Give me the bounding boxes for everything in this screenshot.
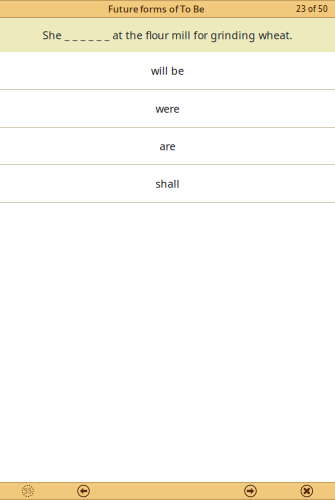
staticText: shall xyxy=(155,176,179,191)
button[interactable]: shall xyxy=(0,165,335,203)
button[interactable]: Close xyxy=(300,484,313,497)
staticText: are xyxy=(159,139,175,153)
staticText: will be xyxy=(151,63,184,78)
button[interactable]: will be xyxy=(0,52,335,90)
button[interactable]: Next question xyxy=(244,484,257,497)
staticText: 23 of 50 xyxy=(296,4,328,14)
button[interactable]: Score xyxy=(21,484,34,497)
staticText: 55 xyxy=(24,487,32,495)
button[interactable]: are xyxy=(0,128,335,165)
staticText: were xyxy=(155,101,179,116)
staticText: She _ _ _ _ _ _ at the flour mill for gr… xyxy=(42,28,292,42)
button[interactable]: Previous question xyxy=(77,484,90,497)
staticText: Future forms of To Be xyxy=(108,3,204,15)
button[interactable]: were xyxy=(0,90,335,128)
